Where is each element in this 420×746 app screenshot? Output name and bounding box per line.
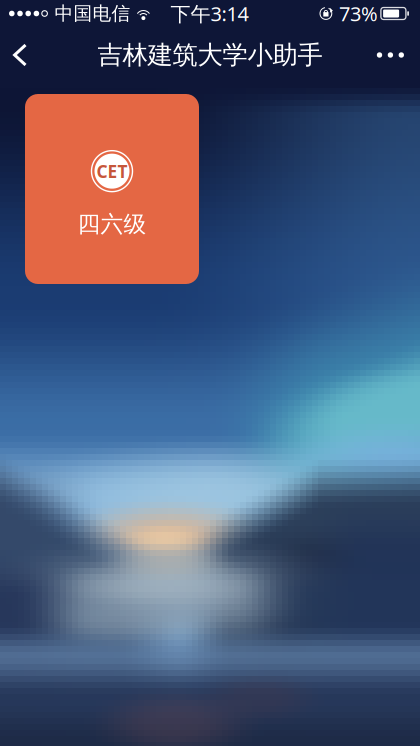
staticText: 中国电信 <box>54 2 130 25</box>
staticText: 下午3:14 <box>170 0 248 27</box>
staticText: CET <box>96 160 127 183</box>
staticText: 四六级 <box>77 210 146 238</box>
button[interactable]: More <box>363 38 420 72</box>
button[interactable]: Back <box>0 33 41 77</box>
button[interactable]: CET <box>25 94 199 284</box>
staticText: 73% <box>339 0 378 27</box>
staticText: 吉林建筑大学小助手 <box>97 39 322 70</box>
